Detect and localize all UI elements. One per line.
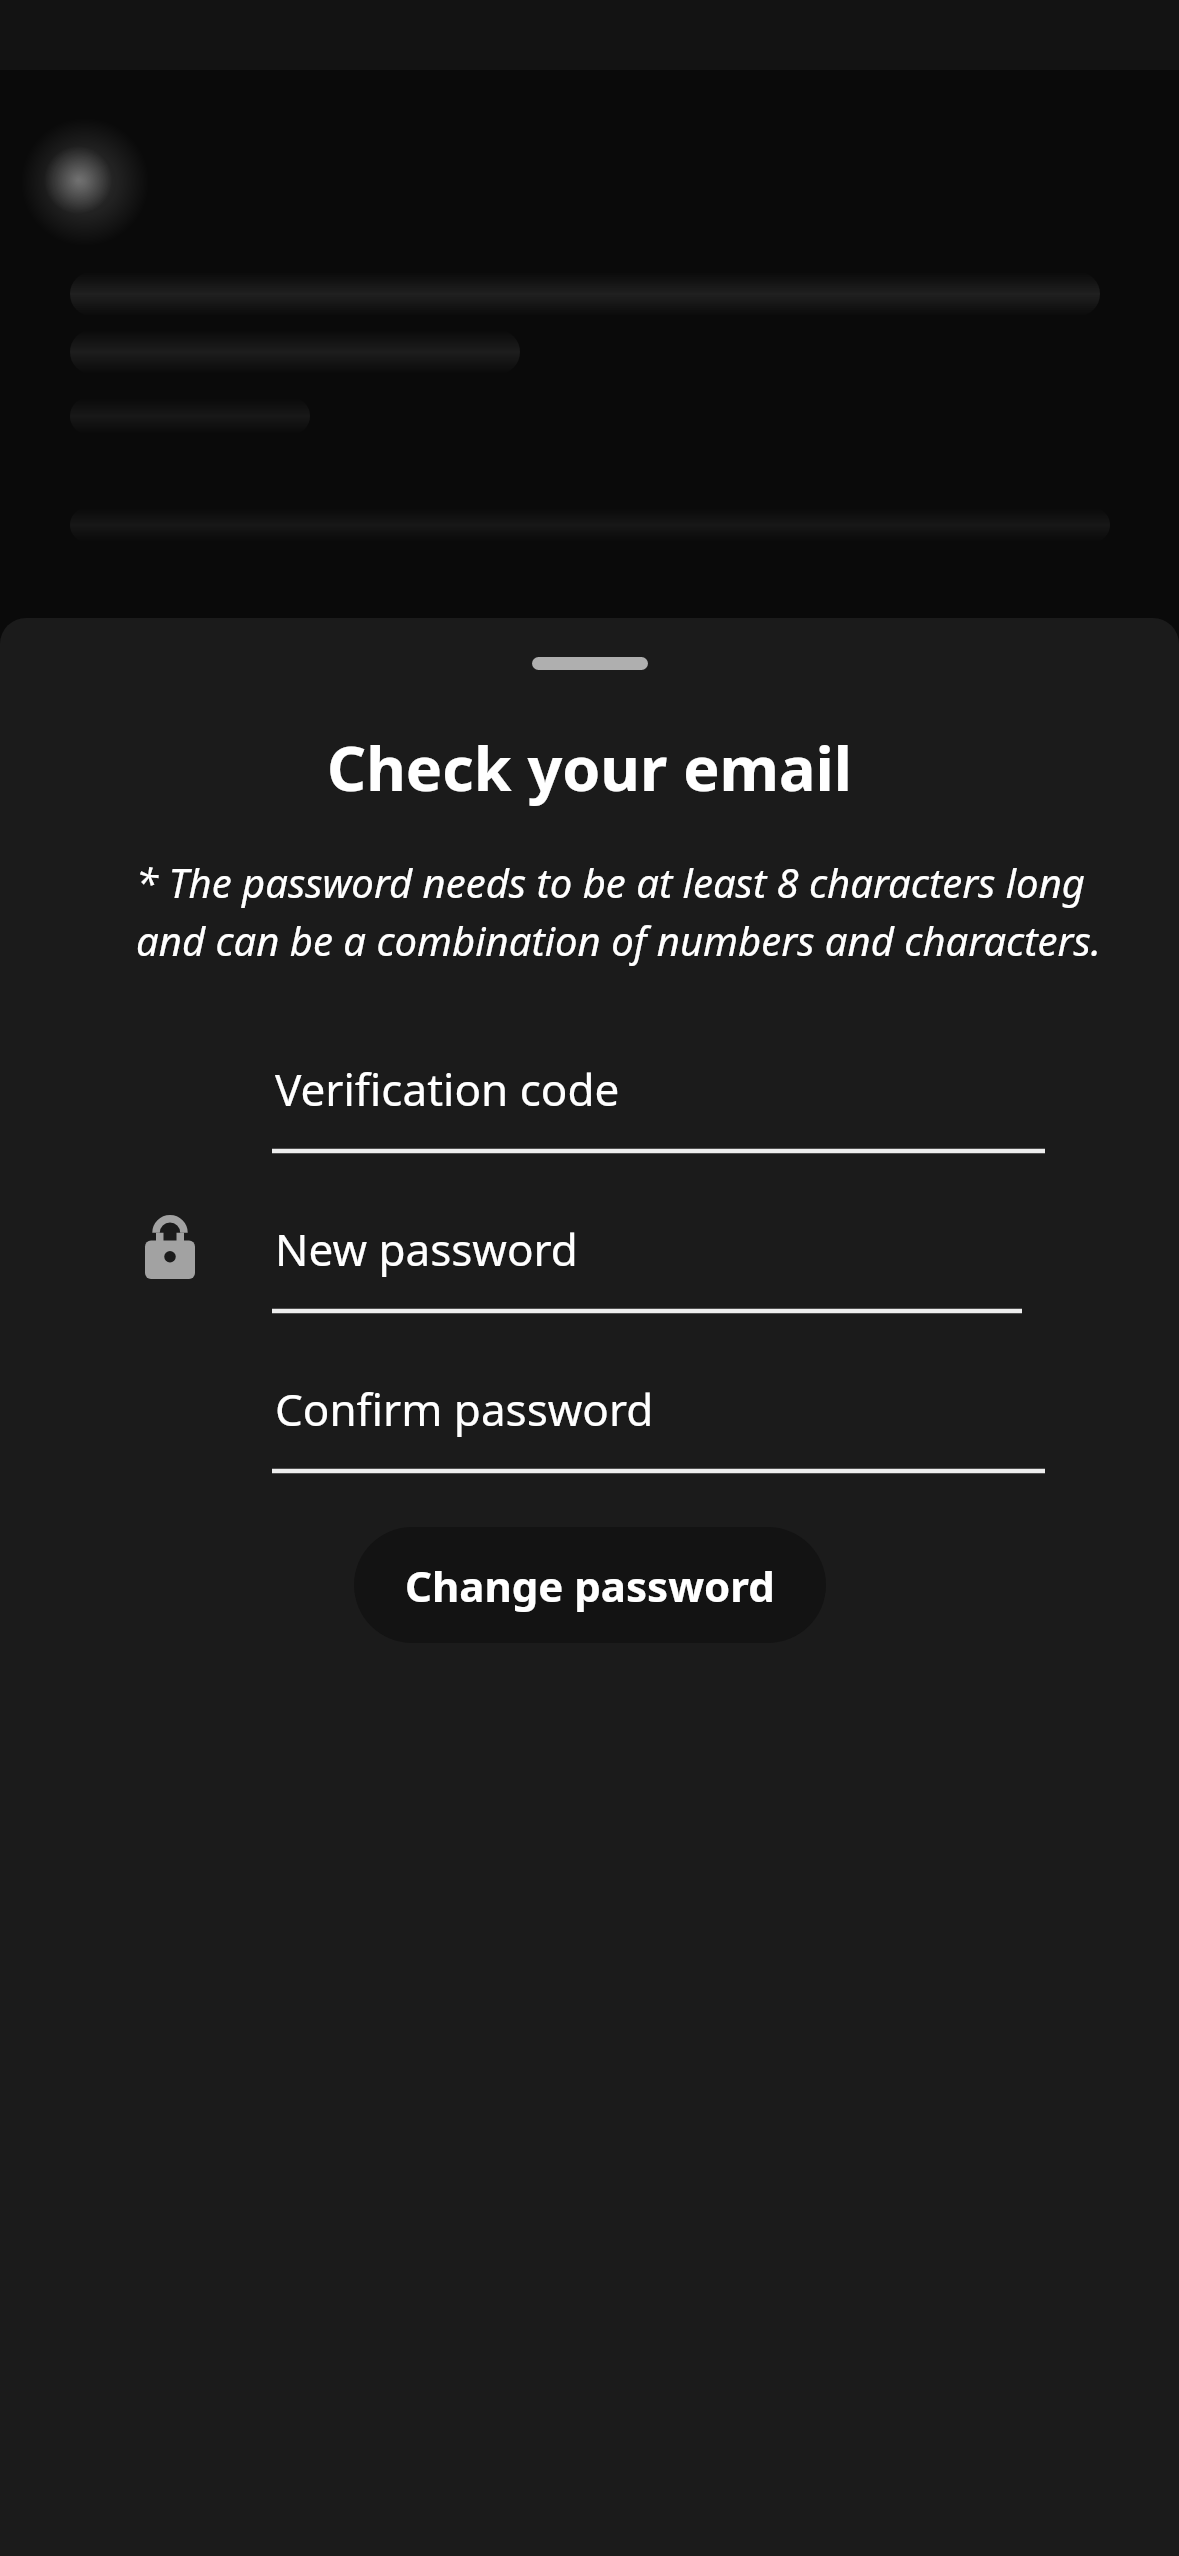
other: Password	[145, 1217, 195, 1279]
staticText: * The password needs to be at least 8 ch…	[136, 855, 1101, 967]
staticText: Check your email	[327, 726, 852, 809]
button[interactable]: Verification code	[0, 1037, 1179, 1159]
staticText: Confirm password	[275, 1379, 654, 1439]
staticText: New password	[275, 1219, 578, 1279]
staticText: Verification code	[275, 1059, 620, 1119]
button[interactable]: Change password	[354, 1527, 826, 1643]
button[interactable]: Password	[0, 1197, 1179, 1319]
button[interactable]: Confirm password	[0, 1357, 1179, 1479]
staticText: Change password	[405, 1557, 775, 1614]
